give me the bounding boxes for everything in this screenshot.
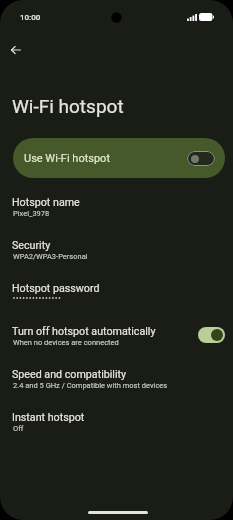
staticText: Hotspot password <box>12 282 100 295</box>
button[interactable]: Security <box>0 229 233 272</box>
staticText: Security <box>12 239 51 252</box>
staticText: Turn off hotspot automatically <box>12 325 156 338</box>
staticText: Pixel_3978 <box>13 209 50 218</box>
staticText: Speed and compatibility <box>12 368 127 381</box>
button[interactable]: Instant hotspot <box>0 401 233 444</box>
staticText: Wi-Fi hotspot <box>12 95 124 117</box>
button[interactable]: Use Wi-Fi hotspot <box>13 138 225 178</box>
staticText: 2.4 and 5 GHz / Compatible with most dev… <box>13 381 168 390</box>
staticText: Instant hotspot <box>12 411 85 424</box>
staticText: WPA2/WPA3-Personal <box>13 252 88 261</box>
button[interactable]: Back <box>3 37 28 62</box>
button[interactable]: Use Wi-Fi hotspot <box>187 151 215 166</box>
staticText: When no devices are connected <box>13 338 119 347</box>
button[interactable]: Hotspot password <box>0 272 233 315</box>
button[interactable]: Turn off hotspot automatically <box>198 327 225 343</box>
staticText: Off <box>13 424 24 433</box>
staticText: Hotspot name <box>12 196 80 209</box>
button[interactable]: Hotspot name <box>0 186 233 229</box>
staticText: 10:00 <box>20 13 41 22</box>
button[interactable]: Speed and compatibility <box>0 358 233 401</box>
staticText: Use Wi-Fi hotspot <box>24 152 110 165</box>
button[interactable]: Turn off hotspot automatically <box>0 315 233 358</box>
